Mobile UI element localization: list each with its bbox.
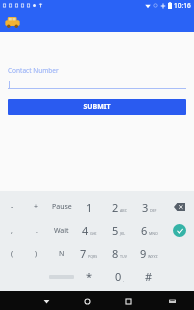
button[interactable]: Hide keyboard xyxy=(163,292,181,310)
button[interactable]: Wait xyxy=(49,219,74,242)
staticText: MNO xyxy=(149,231,158,236)
button[interactable]: , xyxy=(0,219,24,242)
staticText: ABC xyxy=(120,208,127,213)
staticText: # xyxy=(145,269,153,284)
button[interactable]: Recents xyxy=(119,292,137,310)
button[interactable]: Home xyxy=(78,292,96,310)
staticText: 9 xyxy=(140,246,147,261)
button[interactable]: 9 xyxy=(134,242,164,265)
button[interactable]: 3 xyxy=(134,195,164,219)
button[interactable]: - xyxy=(0,195,24,219)
button[interactable]: Back xyxy=(37,292,55,310)
staticText: PQRS xyxy=(88,254,98,259)
staticText: DEF xyxy=(150,208,157,213)
staticText: 4 xyxy=(82,223,89,238)
staticText: 5 xyxy=(112,223,119,238)
staticText: WXYZ xyxy=(148,254,158,259)
button[interactable]: App logo xyxy=(4,13,21,30)
button[interactable]: N xyxy=(49,242,74,265)
button[interactable]: 7 xyxy=(74,242,104,265)
button[interactable]: ) xyxy=(24,242,49,265)
button[interactable]: Backspace xyxy=(164,195,194,219)
staticText: ( xyxy=(11,249,14,259)
button[interactable]: 1 xyxy=(74,195,104,219)
button[interactable]: 6 xyxy=(134,219,164,242)
staticText: 3 xyxy=(142,200,149,215)
button[interactable]: 2 xyxy=(104,195,134,219)
button[interactable]: Enter xyxy=(164,219,194,242)
staticText: + xyxy=(34,202,39,212)
button[interactable]: Contact Number xyxy=(8,66,186,89)
staticText: TUV xyxy=(120,254,127,259)
button[interactable]: Space xyxy=(49,265,74,288)
button[interactable]: * xyxy=(74,265,104,288)
staticText: JKL xyxy=(120,231,126,236)
staticText: , xyxy=(123,277,124,282)
staticText: SUBMIT xyxy=(83,102,111,112)
button[interactable]: # xyxy=(134,265,164,288)
staticText: . xyxy=(36,226,38,236)
staticText: - xyxy=(11,202,14,212)
staticText: 0 xyxy=(115,269,122,284)
staticText: 8 xyxy=(112,246,119,261)
staticText: Contact Number xyxy=(8,66,59,75)
button[interactable]: + xyxy=(24,195,49,219)
button[interactable]: 5 xyxy=(104,219,134,242)
staticText: 7 xyxy=(80,246,87,261)
staticText: Pause xyxy=(52,202,72,212)
staticText: , xyxy=(11,226,13,236)
staticText: ) xyxy=(35,249,38,259)
staticText: 1 xyxy=(86,200,93,215)
button[interactable]: Pause xyxy=(49,195,74,219)
staticText: 10:16 xyxy=(174,1,191,10)
button[interactable]: 4 xyxy=(74,219,104,242)
button[interactable]: 8 xyxy=(104,242,134,265)
staticText: Wait xyxy=(54,226,69,236)
staticText: 2 xyxy=(112,200,119,215)
staticText: 6 xyxy=(141,223,148,238)
staticText: N xyxy=(59,249,65,259)
button[interactable]: 0 xyxy=(104,265,134,288)
staticText: * xyxy=(86,269,93,284)
button[interactable]: SUBMIT xyxy=(8,99,186,115)
staticText: GHI xyxy=(90,231,97,236)
button[interactable]: ( xyxy=(0,242,24,265)
